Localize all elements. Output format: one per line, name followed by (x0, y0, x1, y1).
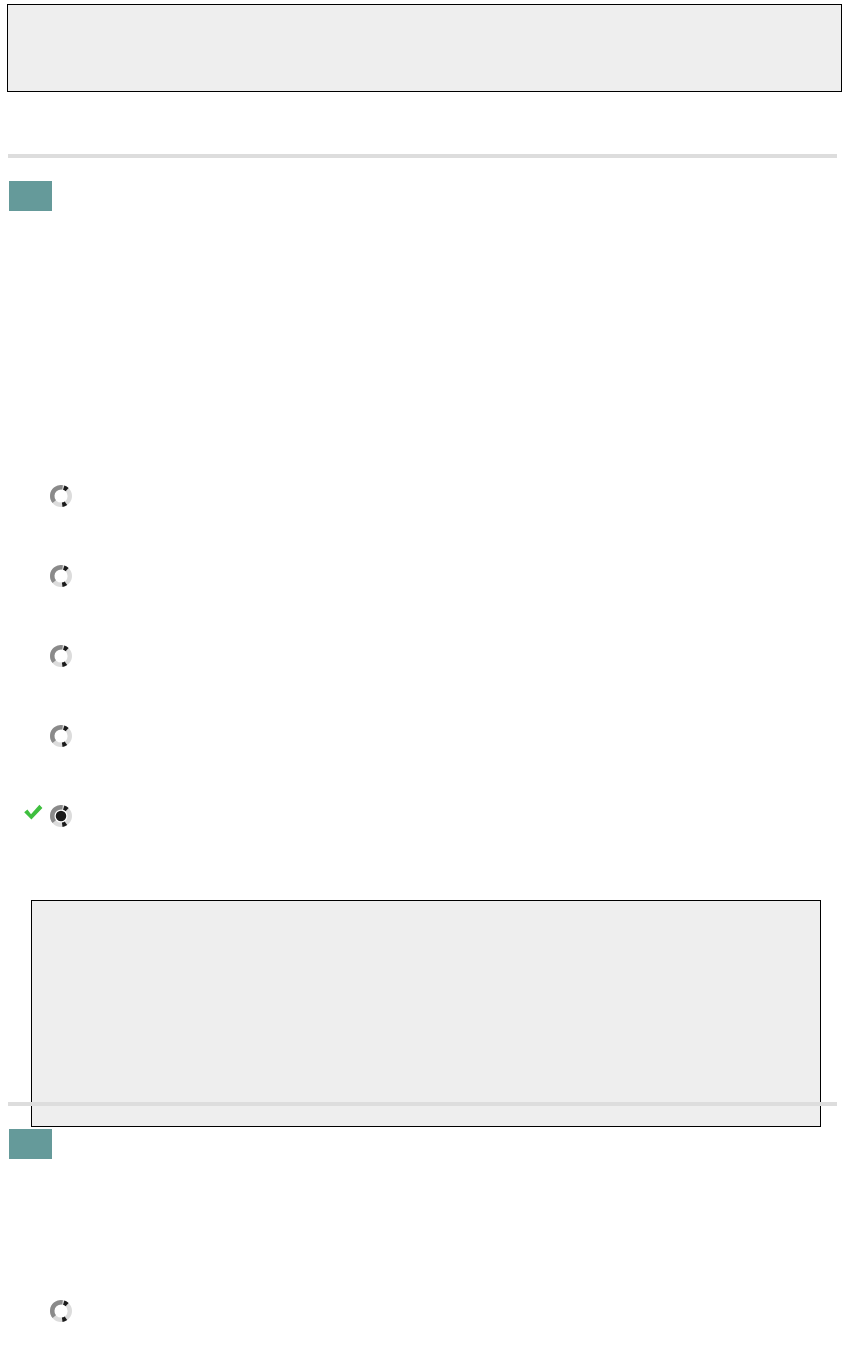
button[interactable]: Loading (50, 645, 72, 667)
button[interactable]: Completed (23, 803, 43, 821)
button[interactable]: Loaded (50, 805, 72, 827)
button[interactable]: Loading (50, 1300, 72, 1322)
button[interactable]: Loading (50, 725, 72, 747)
button[interactable]: Loading (50, 565, 72, 587)
button[interactable]: Loading (50, 485, 72, 507)
button[interactable]: Content panel (31, 900, 821, 1127)
button[interactable]: Content panel (7, 4, 842, 92)
